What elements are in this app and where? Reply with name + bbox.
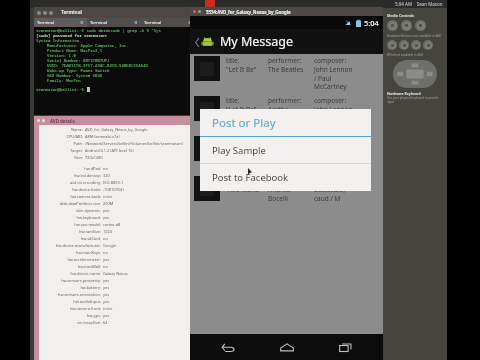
staticText: 1024 — [103, 229, 195, 234]
staticText: Name: — [39, 127, 83, 132]
staticText: John Lennon / Paul McCartney — [314, 105, 353, 131]
staticText: hw.keyboard: — [39, 215, 101, 220]
staticText: Terminal — [37, 20, 80, 26]
staticText: B&eacute; caud / M — [314, 185, 346, 203]
staticText: ISO-8859-1 — [103, 180, 195, 185]
button[interactable]: Back — [208, 334, 248, 360]
button[interactable]: Terminal — [34, 18, 87, 27]
staticText: yes — [103, 313, 195, 318]
button[interactable]: btn — [399, 40, 409, 50]
staticText: hw.sdCard: — [39, 236, 101, 241]
staticText: 5554:AVD_for_Galaxy_Nexus_by_Google — [206, 9, 291, 15]
staticText: seanmason@bellini:~$ — [36, 87, 87, 92]
button[interactable]: Recent apps — [325, 334, 365, 360]
staticText: yes — [103, 208, 195, 213]
staticText: hw.mainKeys: — [39, 250, 101, 255]
button[interactable]: Terminal — [87, 18, 141, 27]
staticText: 5:04 AM Sean Mason — [395, 1, 443, 7]
staticText: hw.battery: — [39, 285, 101, 290]
staticText: Hardware Keyboard — [387, 91, 421, 96]
staticText: System Information — [36, 38, 80, 43]
staticText: no — [103, 250, 195, 255]
staticText: Aretha Franklin — [268, 105, 293, 123]
staticText: skin.dynamic: — [39, 208, 101, 213]
button[interactable]: Post to Facebook — [200, 164, 371, 191]
staticText: Terminal — [90, 20, 134, 26]
button[interactable]: title: — [190, 54, 383, 93]
staticText: hw.ramSize: — [39, 229, 101, 234]
staticText: John Lennon / Paul McCartney — [314, 65, 353, 91]
staticText: AVD details — [50, 118, 75, 124]
staticText: hw.dPad: — [39, 166, 101, 171]
staticText: Play Sample — [212, 144, 266, 157]
staticText: Hardware Buttons not available in AVD — [387, 34, 442, 38]
staticText: title: — [226, 96, 240, 105]
button[interactable]: vol — [387, 20, 398, 31]
button[interactable]: title: — [190, 94, 383, 133]
staticText: "Let It Be" — [226, 65, 257, 74]
staticText: yes — [103, 285, 195, 290]
staticText: Terminal — [61, 9, 82, 16]
staticText: hw.audioInput: — [39, 299, 101, 304]
button[interactable]: title: — [190, 174, 383, 205]
staticText: The Beatles — [268, 65, 304, 74]
staticText: no — [103, 166, 195, 171]
staticText: [sudo] password for seanmason: — [36, 33, 108, 38]
staticText: hw.accelerometer: — [39, 257, 101, 262]
button[interactable]: btn — [411, 40, 421, 50]
staticText: Post or Play — [212, 115, 276, 131]
button[interactable]: Navigate up — [193, 31, 215, 53]
staticText: composer: — [314, 136, 347, 145]
staticText: Skin: — [39, 155, 83, 160]
staticText: /Network/Servers/bellini/Volumes/bellini… — [85, 141, 195, 146]
staticText: yes — [103, 215, 195, 220]
button[interactable]: title: — [190, 134, 383, 173]
staticText: title: — [226, 56, 240, 65]
staticText: ✕ — [134, 20, 138, 25]
button[interactable]: Home — [267, 334, 307, 360]
staticText: yes — [103, 257, 195, 262]
staticText: hw.cpu.model: — [39, 222, 101, 227]
staticText: 720x1280 — [85, 155, 195, 160]
staticText: John Lennon / Paul McCartney — [314, 145, 353, 171]
staticText: hw.sensors.proximity: — [39, 278, 101, 283]
staticText: hw.camera.front: — [39, 306, 101, 311]
staticText: Google — [103, 243, 195, 248]
staticText: Use your physical keyboard to provide in… — [387, 96, 443, 104]
staticText: Manufacturer: Apple Computer, Inc. — [47, 43, 129, 48]
staticText: performer: — [268, 176, 302, 185]
staticText: yes — [103, 278, 195, 283]
button[interactable]: search — [423, 40, 433, 50]
staticText: DPad not available in AVD — [387, 53, 424, 57]
staticText: UUID: 7EA011TB-3F57-A94C-B2C8-540E8CE54A… — [47, 63, 148, 68]
staticText: Product Name: MacPro2,1 — [47, 48, 103, 53]
staticText: ✕ — [188, 20, 192, 25]
staticText: CPU/ABI: — [39, 134, 83, 139]
staticText: Family: MacPro — [47, 78, 81, 83]
staticText: SKU Number: System SKU# — [47, 73, 103, 78]
button[interactable]: D-pad — [393, 60, 437, 88]
staticText: hw.device.name: — [39, 271, 101, 276]
button[interactable]: Terminal — [141, 18, 195, 27]
staticText: hw.sensors.orientation: — [39, 292, 101, 297]
staticText: Terminal — [144, 20, 188, 26]
staticText: avd.ini.encoding: — [39, 180, 101, 185]
staticText: Serial Number: A0T370B7UPJ — [47, 58, 110, 63]
staticText: Target: — [39, 148, 83, 153]
staticText: none — [103, 194, 195, 199]
staticText: Wake-up Type: Power Switch — [47, 68, 110, 73]
staticText: ✕ — [80, 20, 84, 25]
button[interactable]: Play Sample — [200, 137, 371, 163]
button[interactable]: spk — [415, 20, 426, 31]
staticText: no — [103, 264, 195, 269]
staticText: My Message — [220, 33, 294, 50]
staticText: Android 4.1.2 (API level 16) — [85, 148, 195, 153]
staticText: 320 — [103, 173, 195, 178]
staticText: composer: — [314, 96, 347, 105]
button[interactable]: spk — [401, 20, 412, 31]
button[interactable]: btn — [387, 40, 397, 50]
staticText: hw.lcd.density: — [39, 173, 101, 178]
staticText: 64 — [103, 320, 195, 325]
